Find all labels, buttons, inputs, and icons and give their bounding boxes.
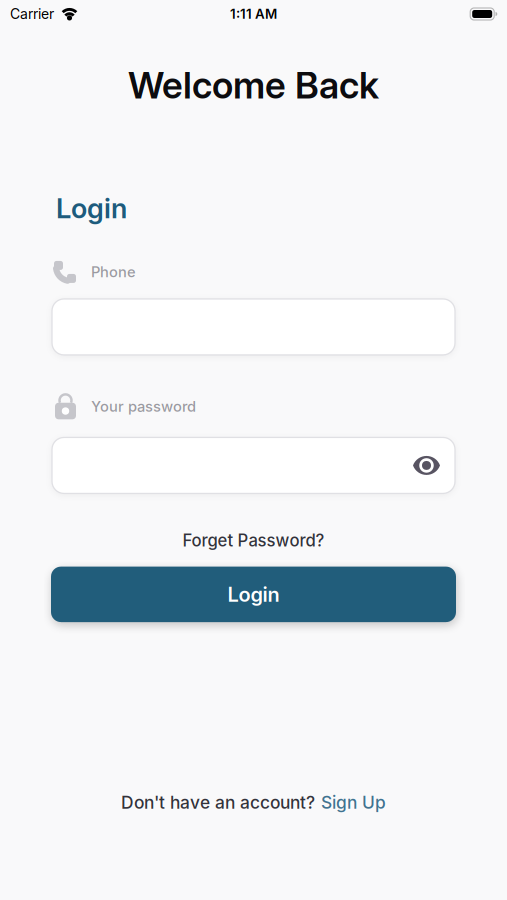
staticText: Carrier <box>10 5 54 22</box>
button[interactable] <box>52 437 455 493</box>
staticText: Login <box>56 192 127 225</box>
staticText: Your password <box>91 398 196 415</box>
staticText: Welcome Back <box>128 63 379 107</box>
staticText: Phone <box>91 263 136 281</box>
button[interactable] <box>52 299 455 355</box>
button[interactable]: Login <box>51 567 456 622</box>
staticText: Forget Password? <box>182 530 324 551</box>
staticText: 1:11 AM <box>230 6 277 22</box>
button[interactable]: Sign Up <box>321 792 386 813</box>
button[interactable]: Forget Password? <box>182 530 324 551</box>
staticText: Don't have an account? <box>121 792 315 813</box>
staticText: Sign Up <box>321 792 386 813</box>
staticText: Login <box>227 582 279 606</box>
